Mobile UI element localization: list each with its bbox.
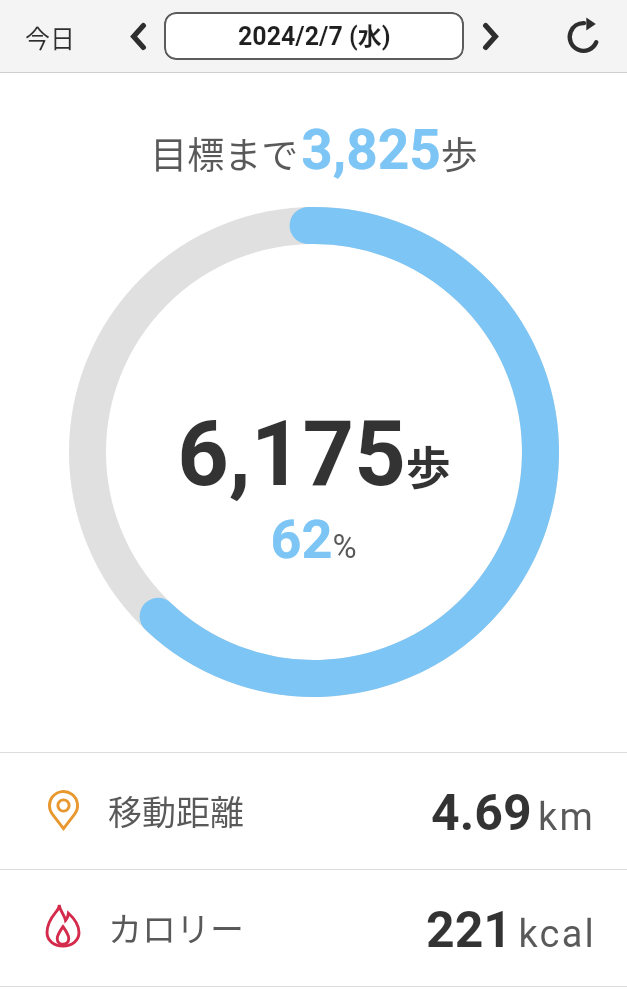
staticText: 4.69 km xyxy=(431,784,596,843)
staticText: 2024/2/7 (水) xyxy=(238,17,391,52)
button[interactable]: カロリー xyxy=(0,869,627,986)
button[interactable]: 移動距離 xyxy=(0,752,627,869)
staticText: 221 kcal xyxy=(426,901,596,960)
staticText: 6,175歩 xyxy=(177,402,451,507)
staticText: 目標まで 3,825歩 xyxy=(150,118,478,182)
button[interactable]: 2024/2/7 (水) xyxy=(164,12,464,60)
staticText: 62% xyxy=(270,508,357,571)
button[interactable]: 今日 xyxy=(8,0,92,73)
staticText: 今日 xyxy=(25,19,76,55)
button[interactable]: Previous day xyxy=(113,0,163,73)
staticText: カロリー xyxy=(108,903,244,952)
button[interactable]: Refresh xyxy=(545,0,617,73)
staticText: 移動距離 xyxy=(108,786,244,835)
button[interactable]: Next day xyxy=(465,0,515,73)
